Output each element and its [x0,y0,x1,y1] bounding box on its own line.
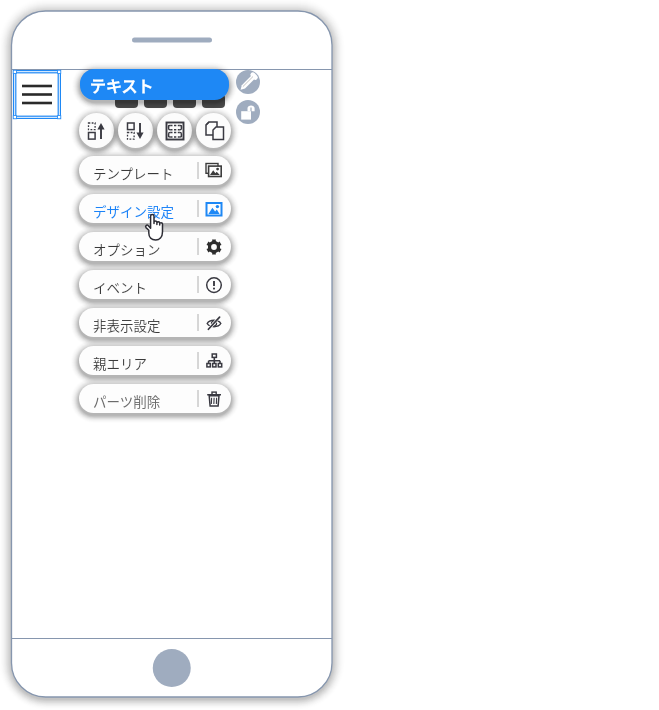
staticText: イベント [93,277,147,297]
staticText: テキスト [90,73,154,96]
button[interactable]: オプション [79,232,231,261]
staticText: テンプレート [93,163,174,183]
button[interactable]: パーツ削除 [79,384,231,413]
button[interactable]: 非表示設定 [79,308,231,337]
button[interactable]: デザイン設定 [79,194,231,223]
button[interactable]: イベント [79,270,231,299]
button[interactable]: Move down [118,113,153,148]
button[interactable]: 親エリア [79,346,231,375]
staticText: オプション [93,239,161,259]
button[interactable]: テンプレート [79,156,231,185]
button[interactable]: Copy [196,113,231,148]
button[interactable]: Layout [157,113,192,148]
button[interactable]: Edit [236,70,260,94]
staticText: デザイン設定 [93,201,174,221]
staticText: 親エリア [93,353,147,373]
button[interactable]: Unlock [236,100,260,124]
button[interactable]: テキスト [80,69,229,100]
staticText: 非表示設定 [93,315,161,335]
staticText: パーツ削除 [93,391,161,411]
button[interactable]: Menu [13,70,61,119]
button[interactable]: Move up [79,113,114,148]
